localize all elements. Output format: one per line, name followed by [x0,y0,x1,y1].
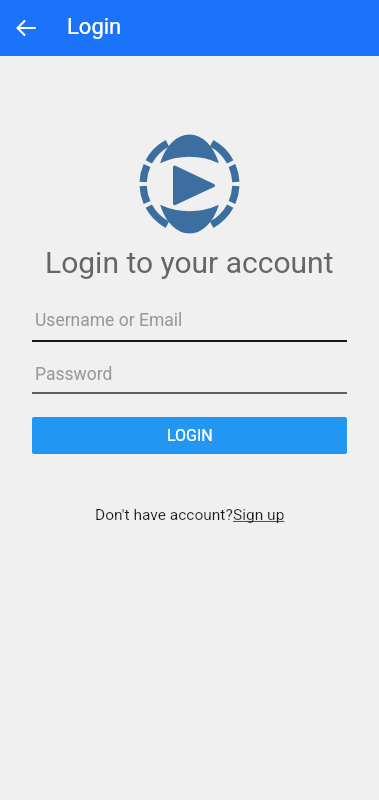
staticText: LOGIN [167,426,213,445]
staticText: Login to your account [45,245,334,280]
button[interactable]: Sign up [233,506,285,524]
button[interactable]: Back [2,4,50,52]
staticText: Password [35,364,113,385]
staticText: Login [67,14,122,40]
staticText: Username or Email [35,310,183,331]
staticText: Don't have account? [95,506,233,524]
button[interactable]: LOGIN [32,417,347,454]
staticText: Sign up [233,506,285,524]
